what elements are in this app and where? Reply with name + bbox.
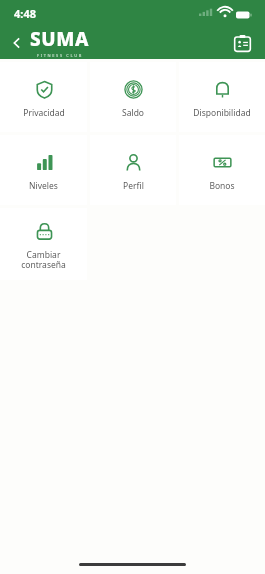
button[interactable]: Saldo bbox=[90, 62, 176, 132]
button[interactable]: Disponibilidad bbox=[179, 62, 265, 132]
button[interactable]: Back bbox=[6, 32, 28, 54]
button[interactable]: Cambiar contraseña bbox=[0, 208, 87, 280]
button[interactable]: Bonos bbox=[179, 135, 265, 205]
button[interactable]: Perfil bbox=[90, 135, 176, 205]
staticText: Perfil bbox=[123, 180, 144, 192]
staticText: Cambiar contraseña bbox=[21, 249, 66, 271]
staticText: Bonos bbox=[209, 180, 235, 192]
staticText: Niveles bbox=[29, 180, 58, 192]
staticText: Privacidad bbox=[23, 107, 65, 119]
staticText: Disponibilidad bbox=[193, 107, 251, 119]
button[interactable]: Niveles bbox=[0, 135, 87, 205]
staticText: FITNESS CLUB bbox=[37, 53, 83, 58]
staticText: SUMA bbox=[30, 26, 90, 52]
staticText: Saldo bbox=[122, 107, 144, 119]
button[interactable]: Privacidad bbox=[0, 62, 87, 132]
button[interactable]: Membership card bbox=[229, 30, 255, 56]
staticText: 4:48 bbox=[14, 6, 36, 21]
